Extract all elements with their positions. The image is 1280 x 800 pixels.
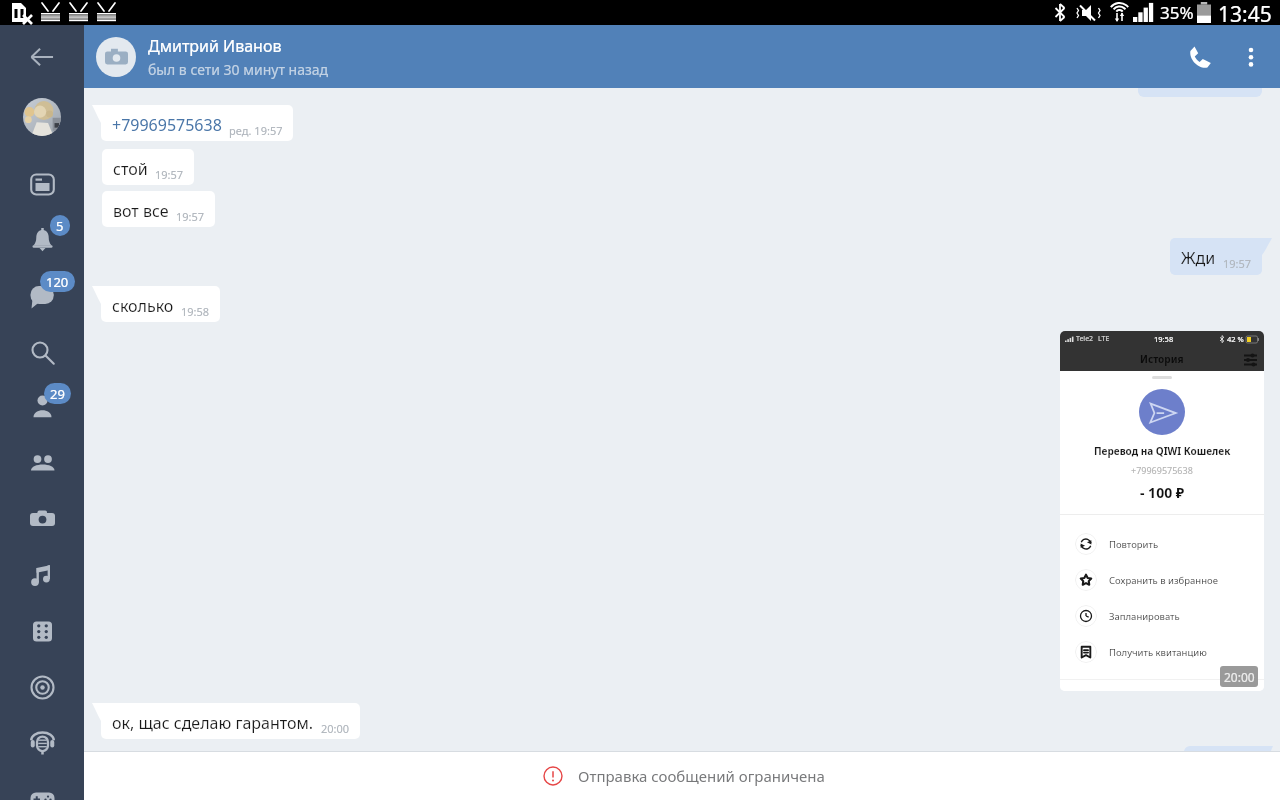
staticText: 20:00: [321, 721, 350, 736]
staticText: 19:57: [155, 167, 184, 182]
staticText: вот все: [113, 200, 169, 222]
button[interactable]: вот все: [102, 191, 215, 227]
button[interactable]: Messages: [18, 272, 66, 320]
staticText: Отправка сообщений ограничена: [578, 766, 825, 786]
staticText: +79969575638: [112, 114, 222, 136]
staticText: Получить квитанцию: [1109, 646, 1207, 659]
button[interactable]: Friends: [18, 381, 66, 429]
button[interactable]: Ads: [18, 663, 66, 711]
staticText: Сохранить в избранное: [1109, 574, 1218, 587]
staticText: 19:58: [181, 304, 210, 319]
staticText: 35%: [1160, 1, 1194, 24]
staticText: сколько: [112, 295, 174, 317]
staticText: 19:57: [1223, 256, 1252, 271]
staticText: 19:57: [176, 209, 205, 224]
staticText: ред. 19:57: [229, 123, 283, 138]
button[interactable]: Запланировать: [1060, 598, 1264, 634]
staticText: 13:45: [1218, 0, 1272, 25]
staticText: - 100 ₽: [1140, 483, 1185, 502]
button[interactable]: Groups: [18, 439, 66, 487]
staticText: 29: [50, 385, 65, 403]
button[interactable]: More: [18, 775, 66, 800]
staticText: Повторить: [1109, 538, 1159, 551]
button[interactable]: Photos: [18, 495, 66, 543]
button[interactable]: More options: [1222, 28, 1280, 86]
button[interactable]: Повторить: [1060, 526, 1264, 562]
button[interactable]: стой: [102, 149, 194, 185]
button[interactable]: Profile: [23, 98, 61, 136]
button[interactable]: Games: [18, 607, 66, 655]
staticText: Дмитрий Иванов: [148, 35, 282, 57]
staticText: История: [1140, 352, 1184, 366]
staticText: ок, щас сделаю гарантом.: [112, 712, 314, 734]
staticText: LTE: [1098, 334, 1110, 344]
staticText: 19:58: [1154, 334, 1174, 344]
staticText: Tele2: [1076, 334, 1094, 344]
button[interactable]: Получить квитанцию: [1060, 634, 1264, 670]
button[interactable]: Podcasts: [18, 719, 66, 767]
staticText: 120: [46, 273, 69, 291]
staticText: был в сети 30 минут назад: [148, 60, 329, 79]
button[interactable]: Music: [18, 551, 66, 599]
button[interactable]: Call: [1166, 29, 1222, 85]
button[interactable]: Жди: [1170, 238, 1262, 275]
staticText: Запланировать: [1109, 610, 1180, 623]
button[interactable]: Photo attachment: [1060, 331, 1264, 691]
button[interactable]: сколько: [101, 286, 220, 322]
button[interactable]: Back: [18, 33, 66, 81]
staticText: +79969575638: [1131, 464, 1193, 476]
button[interactable]: +79969575638: [101, 105, 293, 141]
button[interactable]: Notifications: [18, 215, 66, 263]
button[interactable]: ок, щас сделаю гарантом.: [101, 703, 360, 739]
staticText: 20:00: [1224, 669, 1255, 685]
staticText: 42 %: [1227, 334, 1244, 344]
button[interactable]: Contact avatar: [84, 25, 148, 88]
staticText: 5: [56, 217, 64, 235]
staticText: Жди: [1181, 247, 1216, 269]
button[interactable]: Search: [18, 328, 66, 376]
button[interactable]: Сохранить в избранное: [1060, 562, 1264, 598]
staticText: Перевод на QIWI Кошелек: [1094, 444, 1231, 458]
button[interactable]: News: [18, 160, 66, 208]
staticText: стой: [113, 158, 148, 180]
